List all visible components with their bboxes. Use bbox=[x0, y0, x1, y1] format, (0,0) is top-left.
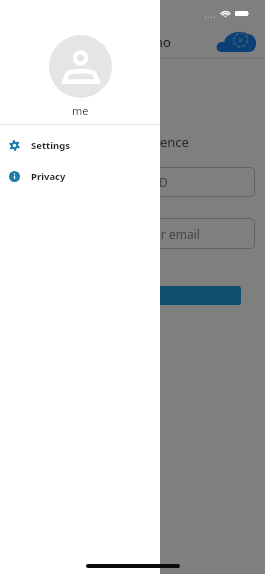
staticText: me bbox=[72, 103, 89, 118]
button[interactable]: Your email bbox=[10, 218, 255, 249]
staticText: Settings bbox=[31, 139, 70, 152]
button[interactable] bbox=[0, 0, 265, 574]
staticText: Your email bbox=[140, 226, 200, 242]
button[interactable]: Profile photo bbox=[49, 35, 112, 98]
button[interactable]: Settings bbox=[0, 130, 160, 161]
button[interactable]: Your ID bbox=[10, 167, 255, 197]
staticText: Demo bbox=[134, 33, 171, 51]
staticText: Privacy bbox=[31, 170, 66, 183]
staticText: Your ID bbox=[126, 174, 168, 190]
staticText: User Experience bbox=[90, 133, 189, 151]
button[interactable]: Submit bbox=[10, 286, 241, 305]
button[interactable]: Privacy bbox=[0, 161, 160, 192]
